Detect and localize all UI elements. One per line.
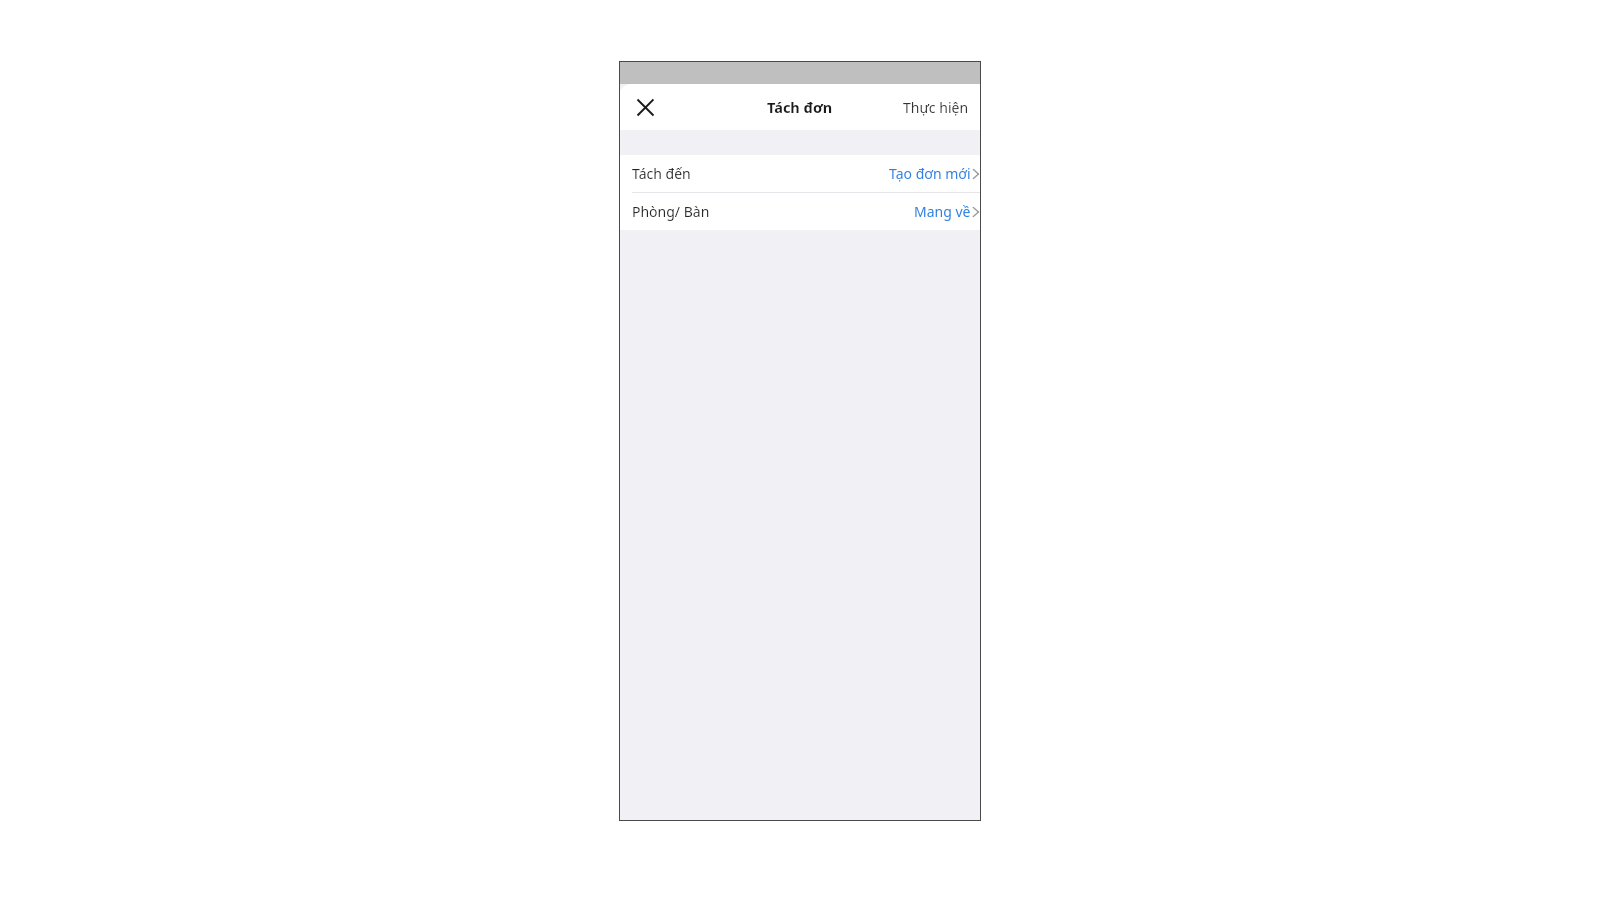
staticText: Mang về	[914, 202, 971, 221]
staticText: Tách đơn	[767, 97, 833, 117]
staticText: Tạo đơn mới	[889, 164, 971, 183]
button[interactable]: Thực hiện	[891, 88, 981, 127]
staticText: Thực hiện	[903, 98, 969, 117]
staticText: Phòng/ Bàn	[632, 202, 710, 221]
button[interactable]: Phòng/ Bàn	[619, 193, 981, 230]
button[interactable]: Đóng	[625, 87, 665, 127]
button[interactable]: Tách đến	[619, 155, 981, 192]
staticText: Tách đến	[632, 164, 691, 183]
